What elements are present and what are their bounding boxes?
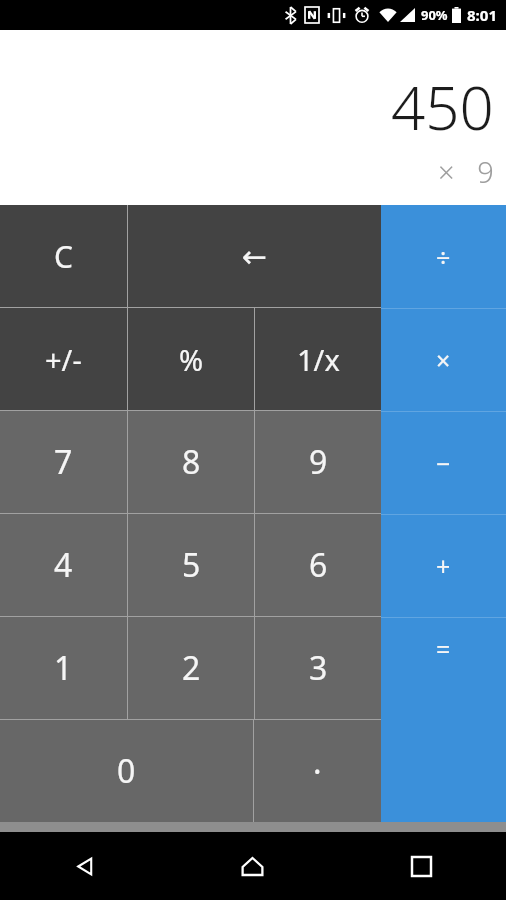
staticText: 6 — [309, 543, 328, 587]
staticText: 5 — [182, 543, 201, 587]
button[interactable]: % — [128, 308, 254, 410]
staticText: × 9 — [438, 152, 494, 191]
staticText: 9 — [309, 440, 328, 484]
button[interactable]: + — [381, 515, 506, 617]
staticText: 2 — [182, 646, 201, 690]
button[interactable]: Equals — [381, 618, 506, 822]
staticText: 4 — [54, 543, 73, 587]
button[interactable]: 4 — [0, 514, 127, 616]
staticText: ÷ — [436, 240, 451, 274]
staticText: 450 — [391, 66, 494, 148]
staticText: 90% — [421, 6, 448, 24]
button[interactable]: 9 — [255, 411, 381, 513]
button[interactable]: · — [254, 720, 381, 822]
staticText: 1/x — [297, 340, 340, 379]
button[interactable]: Back — [0, 832, 168, 900]
button[interactable]: 5 — [128, 514, 254, 616]
staticText: % — [179, 340, 204, 379]
button[interactable]: ← — [128, 205, 381, 307]
staticText: − — [436, 446, 451, 480]
staticText: 1 — [54, 646, 73, 690]
button[interactable]: C — [0, 205, 127, 307]
button[interactable]: × — [381, 309, 506, 411]
button[interactable]: 1/x — [255, 308, 381, 410]
staticText: +/- — [45, 340, 82, 379]
staticText: 7 — [54, 440, 73, 484]
button[interactable]: ÷ — [381, 205, 506, 308]
staticText: + — [436, 549, 451, 583]
staticText: C — [54, 236, 73, 277]
staticText: 0 — [117, 749, 136, 793]
staticText: = — [436, 632, 451, 666]
staticText: 8:01 — [467, 5, 497, 25]
button[interactable]: Home — [168, 832, 337, 900]
button[interactable]: +/- — [0, 308, 127, 410]
button[interactable]: 8 — [128, 411, 254, 513]
staticText: 3 — [309, 646, 328, 690]
staticText: 8 — [182, 440, 201, 484]
staticText: ← — [242, 239, 268, 274]
staticText: × — [436, 343, 451, 377]
button[interactable]: Recent apps — [337, 832, 506, 900]
button[interactable]: 7 — [0, 411, 127, 513]
button[interactable]: 3 — [255, 617, 381, 719]
button[interactable]: 0 — [0, 720, 253, 822]
staticText: · — [313, 749, 322, 793]
button[interactable]: 2 — [128, 617, 254, 719]
button[interactable]: 1 — [0, 617, 127, 719]
button[interactable]: − — [381, 412, 506, 514]
button[interactable]: 6 — [255, 514, 381, 616]
